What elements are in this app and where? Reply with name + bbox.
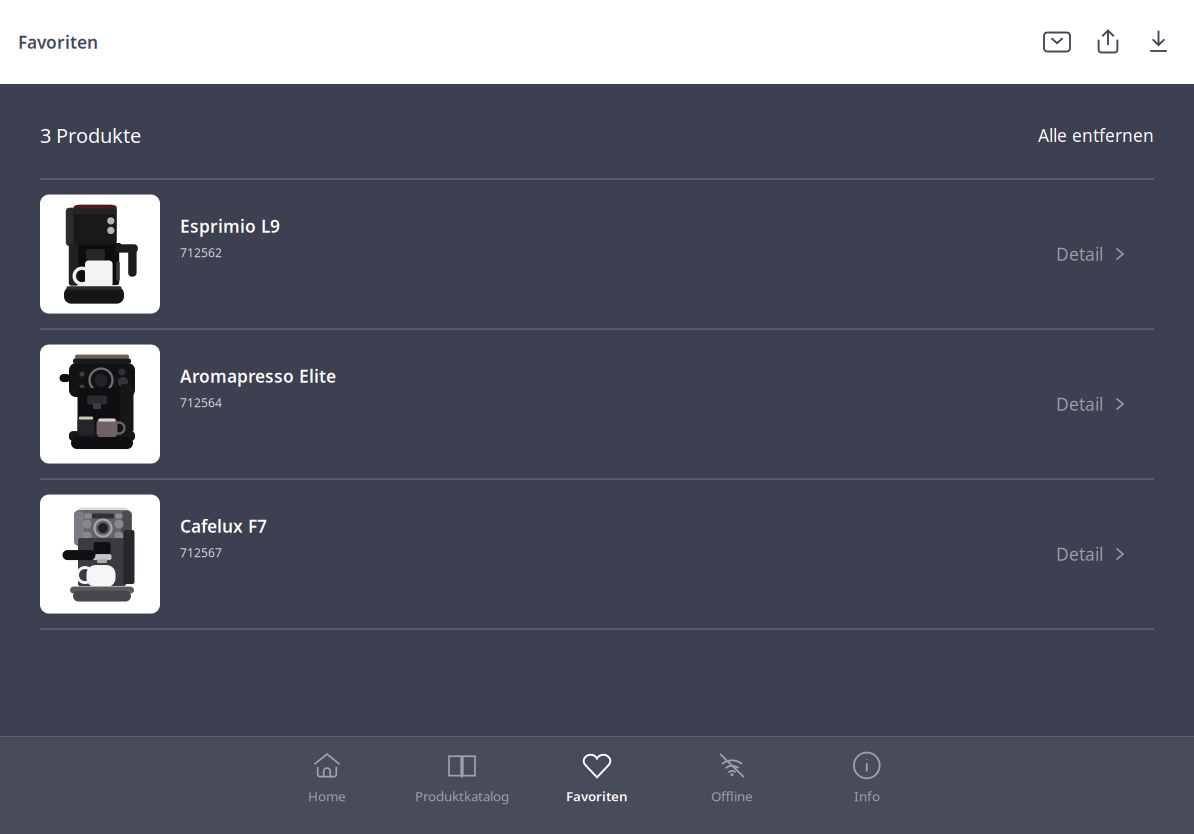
staticText: Alle entfernen xyxy=(1038,124,1154,147)
staticText: Home xyxy=(308,787,346,805)
staticText: Detail xyxy=(1056,543,1103,566)
staticText: Favoriten xyxy=(18,30,98,53)
staticText: 712562 xyxy=(180,245,222,260)
button[interactable]: Favoriten xyxy=(529,749,664,822)
button[interactable]: Mail xyxy=(1043,29,1071,54)
button[interactable]: Produktkatalog xyxy=(394,749,529,822)
staticText: 712564 xyxy=(180,395,222,410)
staticText: Aromapresso Elite xyxy=(180,365,336,388)
button[interactable]: Info xyxy=(799,749,934,822)
button[interactable]: Share xyxy=(1097,29,1119,54)
staticText: Offline xyxy=(711,787,753,805)
button[interactable]: Aromapresso Elite xyxy=(40,330,1154,479)
staticText: 3 Produkte xyxy=(40,122,141,149)
staticText: Produktkatalog xyxy=(415,787,509,805)
staticText: Info xyxy=(854,787,880,805)
button[interactable]: Alle entfernen xyxy=(1038,124,1154,147)
staticText: 712567 xyxy=(180,545,222,560)
staticText: Detail xyxy=(1056,243,1103,266)
staticText: Favoriten xyxy=(566,787,628,805)
staticText: Esprimio L9 xyxy=(180,215,280,238)
staticText: Detail xyxy=(1056,393,1103,416)
button[interactable]: Cafelux F7 xyxy=(40,480,1154,629)
button[interactable]: Home xyxy=(259,749,394,822)
button[interactable]: Esprimio L9 xyxy=(40,180,1154,329)
button[interactable]: Offline xyxy=(664,749,799,822)
staticText: Cafelux F7 xyxy=(180,515,267,538)
button[interactable]: Download xyxy=(1149,29,1168,54)
